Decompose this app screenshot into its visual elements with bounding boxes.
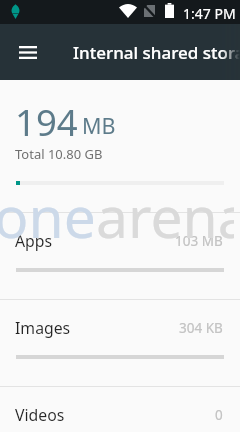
staticText: arena [96,177,234,255]
staticText: Internal shared storage [73,41,240,64]
button[interactable]: Apps [0,212,240,299]
button[interactable]: Videos [0,386,240,432]
staticText: MB [82,111,116,140]
staticText: 1:47 PM [183,4,236,23]
staticText: Images [15,317,71,339]
staticText: Videos [15,404,65,426]
button[interactable]: Images [0,299,240,386]
staticText: 194 [15,97,78,147]
staticText: Apps [15,230,53,252]
staticText: one [0,177,96,255]
staticText: 304 KB [179,319,223,337]
staticText: Total 10.80 GB [15,145,103,163]
staticText: 0 [215,406,223,424]
button[interactable]: Open navigation drawer [7,31,49,73]
staticText: 103 MB [175,232,223,250]
